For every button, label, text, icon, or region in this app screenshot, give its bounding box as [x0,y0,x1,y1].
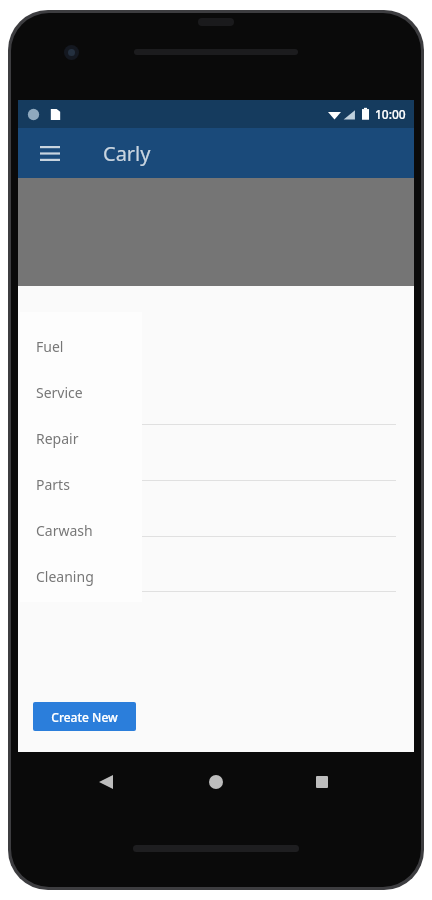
staticText: Service [36,383,83,402]
button[interactable]: Back [86,762,126,802]
button[interactable]: Home [196,762,236,802]
button[interactable]: Fuel [20,323,142,369]
staticText: Carwash [36,521,93,540]
staticText: Repair [36,429,79,448]
button[interactable]: Parts [20,461,142,507]
staticText: Parts [36,475,70,494]
staticText: Fuel [36,337,64,356]
staticText: Carly [103,140,151,167]
staticText: 10:00 [375,106,406,122]
button[interactable]: Service [20,369,142,415]
button[interactable]: Carwash [20,507,142,553]
button[interactable]: Repair [20,415,142,461]
button[interactable]: Create New [33,702,136,731]
button[interactable]: Open navigation drawer [32,135,68,171]
staticText: Cleaning [36,567,94,586]
button[interactable]: Recent apps [302,762,342,802]
staticText: Create New [51,709,118,725]
button[interactable]: Cleaning [20,553,142,599]
